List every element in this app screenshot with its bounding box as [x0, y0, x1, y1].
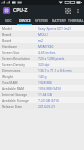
button[interactable]: More options: [73, 6, 82, 15]
button[interactable]: Internal Storage: [0, 91, 84, 97]
button[interactable]: Screen Size: [0, 49, 84, 55]
staticText: Hardware: [2, 44, 18, 48]
button[interactable]: Release Date: [0, 103, 84, 109]
button[interactable]: SOC: [0, 16, 16, 25]
button[interactable]: Brand: [0, 31, 84, 37]
staticText: CPU-Z: [13, 7, 28, 14]
staticText: 1928 MB: [38, 80, 52, 84]
staticText: Internal Storage: [2, 92, 28, 96]
button[interactable]: Layout grid: [62, 5, 73, 16]
staticText: 4.65 inches: [38, 50, 56, 54]
staticText: Screen Size: [2, 50, 20, 54]
staticText: 7.20 GB (61%): [38, 98, 60, 102]
staticText: 320 dpi: [38, 62, 50, 66]
button[interactable]: Weight: [0, 73, 84, 79]
staticText: SOC: [5, 18, 12, 23]
staticText: THERMAL: [68, 18, 84, 23]
button[interactable]: Total RAM: [0, 79, 84, 85]
staticText: Board: [2, 38, 12, 42]
button[interactable]: DEVICE: [16, 16, 33, 25]
staticText: MSM7X30: [38, 44, 54, 48]
staticText: Dimensions: [2, 68, 21, 72]
button[interactable]: Board: [0, 37, 84, 43]
button[interactable]: Hardware: [0, 43, 84, 49]
staticText: 140 g: [38, 74, 47, 78]
staticText: m2: [38, 38, 43, 42]
button[interactable]: Available RAM: [0, 85, 84, 91]
staticText: 136.7 x 71.1 x 8.6 mm: [38, 68, 72, 72]
staticText: 2014-05-01: [38, 104, 56, 108]
staticText: Available Storage: [2, 98, 29, 102]
staticText: MOLU: [38, 32, 48, 36]
staticText: Screen Density: [2, 62, 25, 66]
button[interactable]: Screen Density: [0, 61, 84, 67]
staticText: Release Date: [2, 104, 23, 108]
button[interactable]: Model: [0, 25, 84, 31]
staticText: SYSTEM: [35, 18, 48, 23]
button[interactable]: CPU-Z app icon: [3, 7, 10, 14]
staticText: Screen Resolution: [2, 56, 30, 60]
button[interactable]: Dimensions: [0, 67, 84, 73]
staticText: 11.64 GB: [38, 92, 52, 96]
button[interactable]: BATTERY: [50, 16, 67, 25]
staticText: Weight: [2, 74, 13, 78]
button[interactable]: SYSTEM: [33, 16, 50, 25]
staticText: Available RAM: [2, 86, 24, 90]
button[interactable]: Screen Resolution: [0, 55, 84, 61]
staticText: DEVICE: [19, 18, 31, 23]
button[interactable]: Available Storage: [0, 97, 84, 103]
staticText: 720 x 1280 pixels: [38, 56, 65, 60]
staticText: Brand: [2, 32, 12, 36]
staticText: Sony Xperia XZ1 (m2): [38, 26, 71, 30]
staticText: 1056 MB (54%): [38, 86, 61, 90]
button[interactable]: THERMAL: [67, 16, 84, 25]
staticText: BATTERY: [52, 18, 66, 23]
staticText: Total RAM: [2, 80, 18, 84]
staticText: Model: [2, 26, 12, 30]
